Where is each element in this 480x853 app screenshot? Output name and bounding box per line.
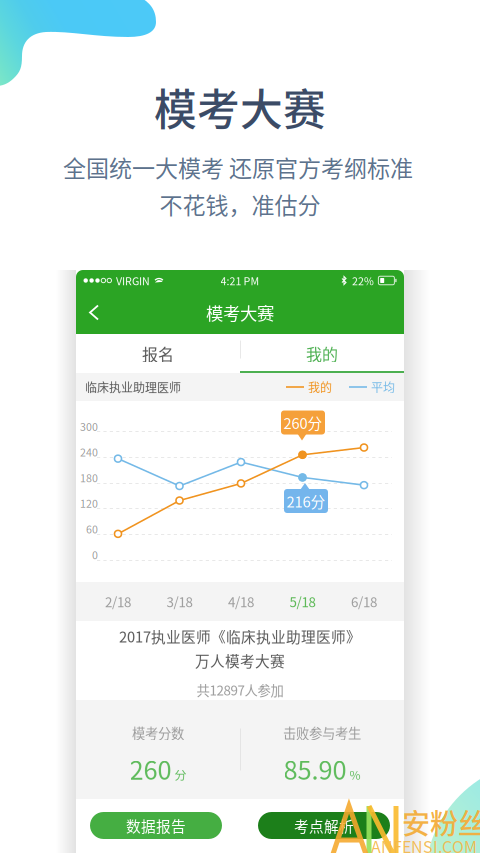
staticText: 4:21 PM xyxy=(220,273,259,288)
button[interactable]: 6/18 xyxy=(338,582,390,621)
button[interactable]: 数据报告 xyxy=(90,812,222,839)
staticText: 4/18 xyxy=(228,592,254,611)
button[interactable]: 4/18 xyxy=(215,582,267,621)
staticText: 模考分数 xyxy=(132,723,184,742)
staticText: 2/18 xyxy=(105,592,131,611)
staticText: 临床执业助理医师 xyxy=(85,378,181,396)
button[interactable]: 5/18 xyxy=(276,582,328,621)
staticText: 120 xyxy=(80,495,98,511)
staticText: VIRGIN xyxy=(116,273,150,288)
staticText: 0 xyxy=(92,547,98,562)
staticText: 5/18 xyxy=(289,592,315,611)
staticText: 22% xyxy=(352,273,374,288)
staticText: 考点解析 xyxy=(294,815,354,836)
staticText: 共12897人参加 xyxy=(196,680,283,699)
staticText: 模考大赛 xyxy=(154,76,326,138)
staticText: 平均 xyxy=(371,378,395,396)
staticText: % xyxy=(349,766,360,783)
staticText: 万人模考大赛 xyxy=(195,650,285,671)
staticText: 216分 xyxy=(286,490,325,512)
staticText: 击败参与考生 xyxy=(283,723,361,742)
staticText: 240 xyxy=(80,444,98,460)
staticText: 模考大赛 xyxy=(206,300,274,325)
staticText: 85.90 xyxy=(283,750,346,787)
staticText: 报名 xyxy=(142,342,174,365)
staticText: 我的 xyxy=(308,378,332,396)
button[interactable]: 返回 xyxy=(84,297,106,327)
button[interactable]: 我的 xyxy=(240,334,404,373)
staticText: 安粉丝 xyxy=(402,802,480,842)
staticText: 数据报告 xyxy=(126,815,186,836)
button[interactable]: 2/18 xyxy=(92,582,144,621)
staticText: 不花钱，准估分 xyxy=(159,187,320,221)
staticText: 3/18 xyxy=(166,592,192,611)
button[interactable]: 3/18 xyxy=(153,582,205,621)
button[interactable]: 报名 xyxy=(76,334,240,373)
staticText: 300 xyxy=(80,419,98,434)
staticText: 260 xyxy=(129,750,171,787)
button[interactable]: 考点解析 xyxy=(258,812,390,839)
staticText: 60 xyxy=(86,521,98,536)
staticText: 260分 xyxy=(283,412,322,433)
staticText: 分 xyxy=(174,766,186,783)
staticText: 180 xyxy=(80,470,98,485)
staticText: 全国统一大模考 还原官方考纲标准 xyxy=(63,150,413,184)
staticText: ANFENSI.COM xyxy=(371,834,477,853)
staticText: 6/18 xyxy=(351,592,377,611)
staticText: 2017执业医师《临床执业助理医师》 xyxy=(119,626,361,647)
staticText: 我的 xyxy=(306,342,338,365)
